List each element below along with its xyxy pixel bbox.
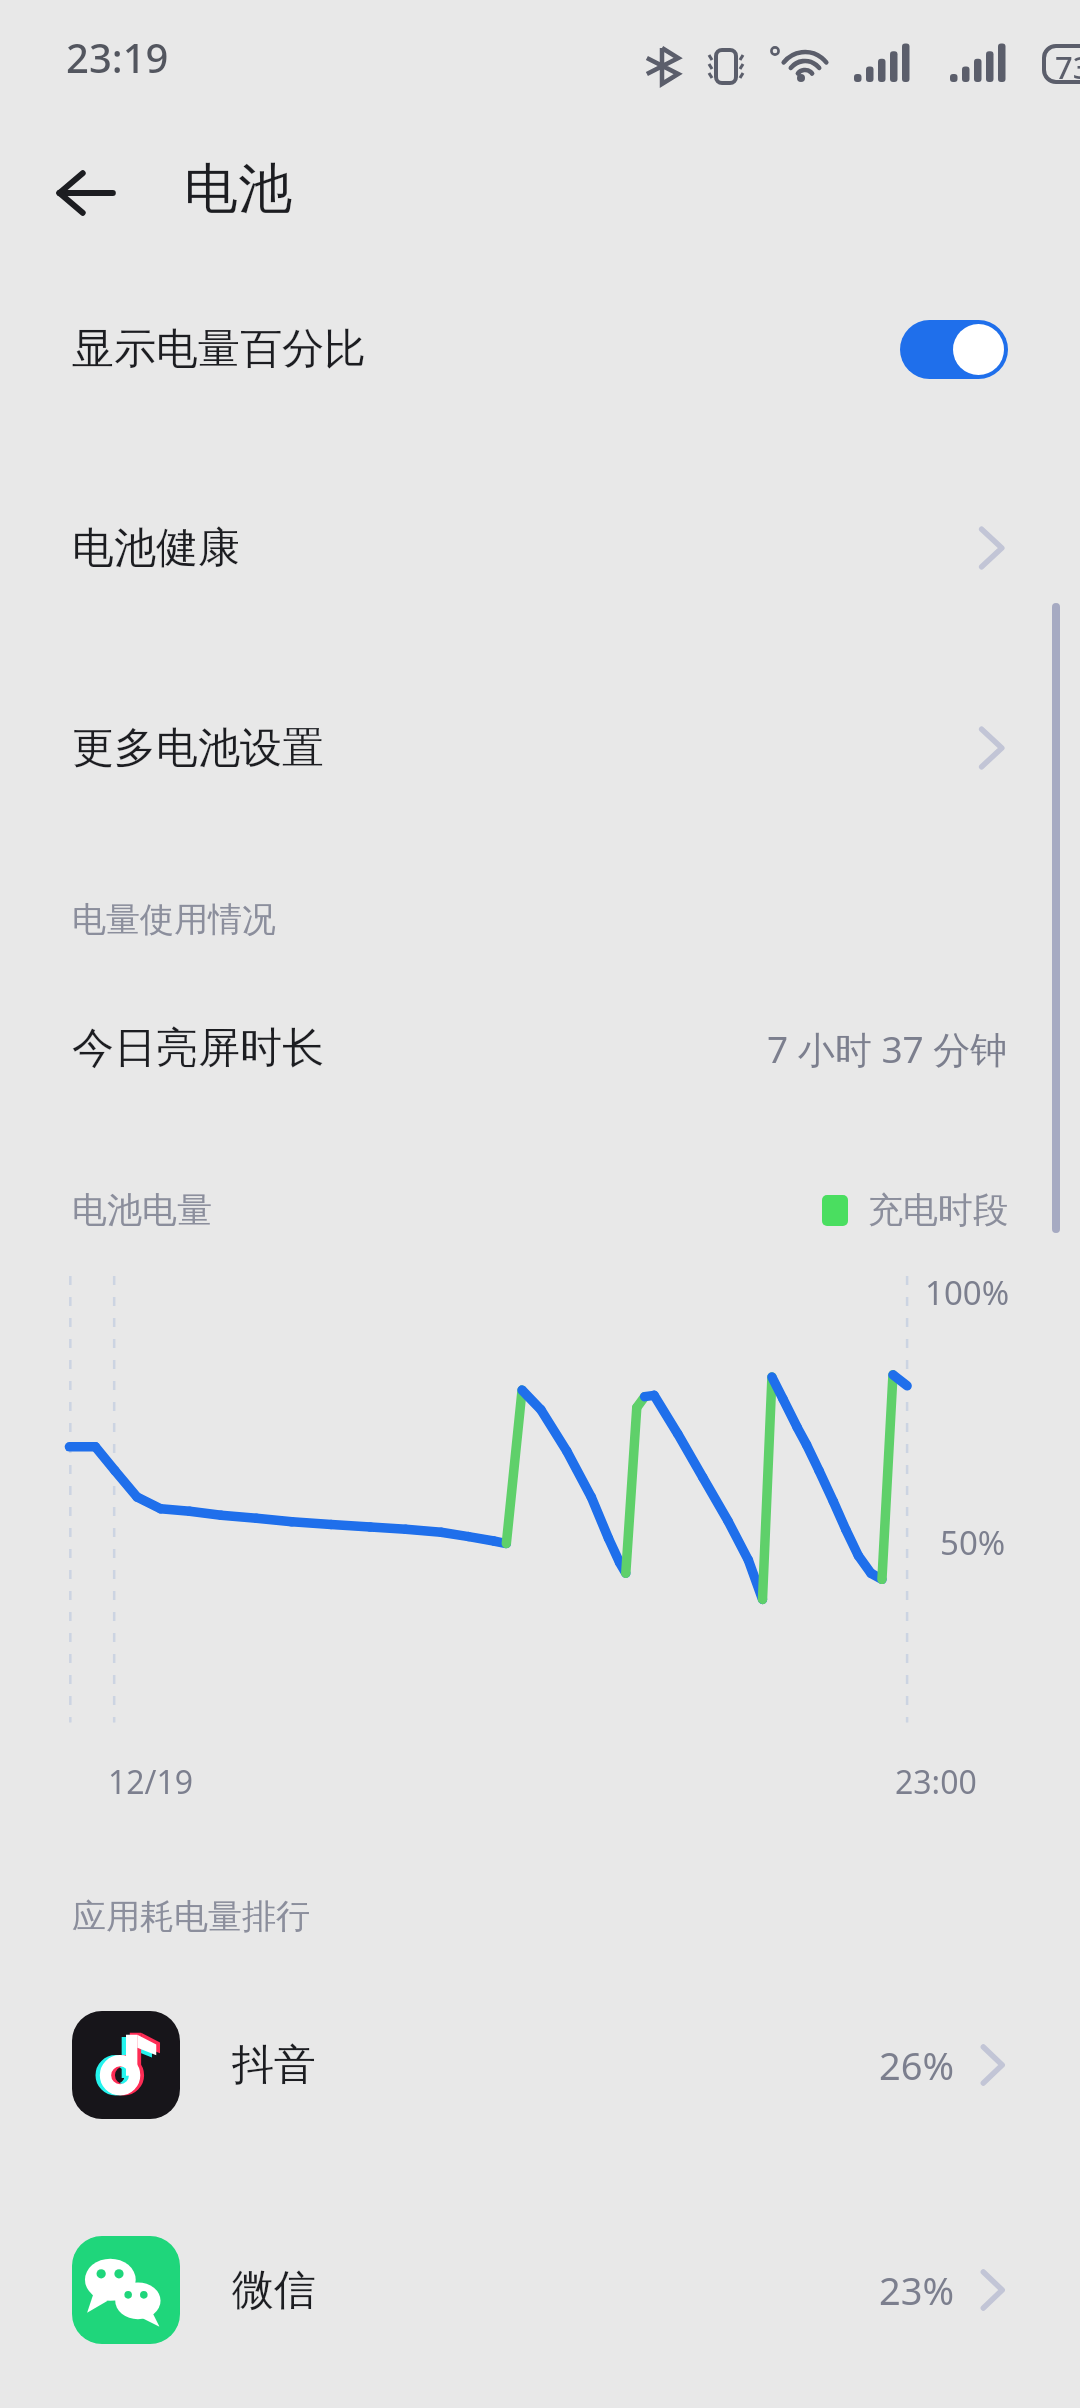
staticText: 电池健康 <box>72 522 240 575</box>
staticText: 26% <box>879 2039 955 2091</box>
staticText: 电池 <box>184 155 292 223</box>
staticText: 微信 <box>232 2264 316 2317</box>
staticText: 7 小时 37 分钟 <box>767 1023 1008 1074</box>
staticText: 12/19 <box>108 1760 194 1804</box>
staticText: 73 <box>1055 46 1080 88</box>
staticText: 更多电池设置 <box>72 722 324 775</box>
staticText: 23:00 <box>895 1760 977 1804</box>
button[interactable]: 抖音 <box>0 1990 1080 2140</box>
button[interactable]: 更多电池设置 <box>0 692 1080 804</box>
button[interactable]: 电池健康 <box>0 492 1080 604</box>
staticText: 抖音 <box>232 2039 316 2092</box>
staticText: 100% <box>925 1270 1010 1315</box>
button[interactable]: 今日亮屏时长 <box>0 1000 1080 1096</box>
staticText: 电量使用情况 <box>72 898 276 941</box>
button[interactable]: 微信 <box>0 2215 1080 2365</box>
staticText: 电池电量 <box>72 1188 212 1232</box>
staticText: 23% <box>879 2264 955 2316</box>
button[interactable]: 显示电量百分比 <box>0 290 1080 408</box>
staticText: 充电时段 <box>868 1188 1008 1232</box>
staticText: 今日亮屏时长 <box>72 1022 324 1075</box>
staticText: 50% <box>940 1520 1006 1565</box>
staticText: 显示电量百分比 <box>72 323 366 376</box>
staticText: 23:19 <box>66 30 169 84</box>
staticText: 应用耗电量排行 <box>72 1895 310 1938</box>
button[interactable]: Back <box>42 150 128 236</box>
